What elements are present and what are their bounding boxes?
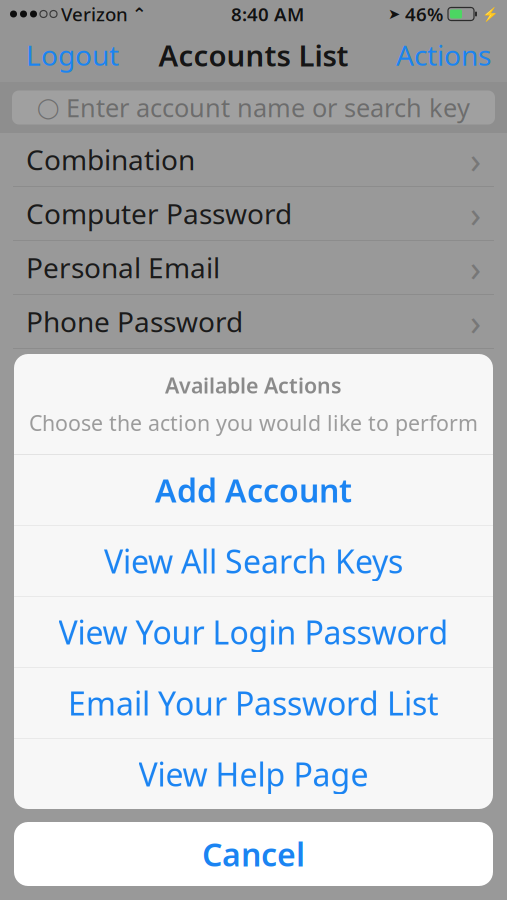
button[interactable]: ◯ bbox=[12, 90, 495, 124]
staticText: ◯ bbox=[37, 96, 59, 119]
staticText: Personal Email bbox=[26, 249, 220, 286]
staticText: Computer Password bbox=[26, 195, 292, 232]
staticText: Phone Password bbox=[26, 303, 243, 340]
staticText: ⌃ bbox=[132, 4, 147, 24]
staticText: › bbox=[470, 190, 481, 237]
button[interactable]: Phone Password bbox=[0, 295, 507, 349]
staticText: Accounts List bbox=[158, 35, 348, 74]
button[interactable]: Cancel bbox=[14, 822, 493, 886]
staticText: Enter account name or search key bbox=[66, 91, 470, 124]
staticText: View Help Page bbox=[138, 753, 368, 795]
staticText: Email Your Password List bbox=[68, 682, 439, 724]
staticText: ⚡ bbox=[482, 6, 499, 22]
button[interactable]: View Your Login Password bbox=[14, 597, 493, 667]
staticText: 8:40 AM bbox=[231, 2, 304, 26]
staticText: View Your Login Password bbox=[58, 611, 448, 653]
button[interactable]: View Help Page bbox=[14, 739, 493, 809]
staticText: Available Actions bbox=[165, 371, 342, 399]
staticText: › bbox=[470, 244, 481, 291]
staticText: Verizon bbox=[61, 2, 128, 26]
staticText: Add Account bbox=[155, 469, 352, 511]
staticText: Cancel bbox=[202, 833, 305, 875]
staticText: ➤ bbox=[388, 6, 400, 22]
staticText: View All Search Keys bbox=[104, 540, 403, 582]
button[interactable]: Personal Email bbox=[0, 241, 507, 295]
button[interactable]: Computer Password bbox=[0, 187, 507, 241]
button[interactable]: Logout bbox=[0, 28, 119, 82]
staticText: Choose the action you would like to perf… bbox=[29, 408, 478, 437]
staticText: 46% bbox=[405, 2, 443, 26]
button[interactable]: Email Your Password List bbox=[14, 668, 493, 738]
staticText: › bbox=[470, 298, 481, 345]
button[interactable]: Combination bbox=[0, 133, 507, 187]
staticText: Actions bbox=[396, 36, 491, 74]
staticText: › bbox=[470, 136, 481, 183]
staticText: Combination bbox=[26, 141, 195, 178]
button[interactable]: Actions bbox=[396, 28, 507, 82]
button[interactable]: Add Account bbox=[14, 455, 493, 525]
button[interactable]: View All Search Keys bbox=[14, 526, 493, 596]
staticText: Logout bbox=[26, 36, 119, 74]
